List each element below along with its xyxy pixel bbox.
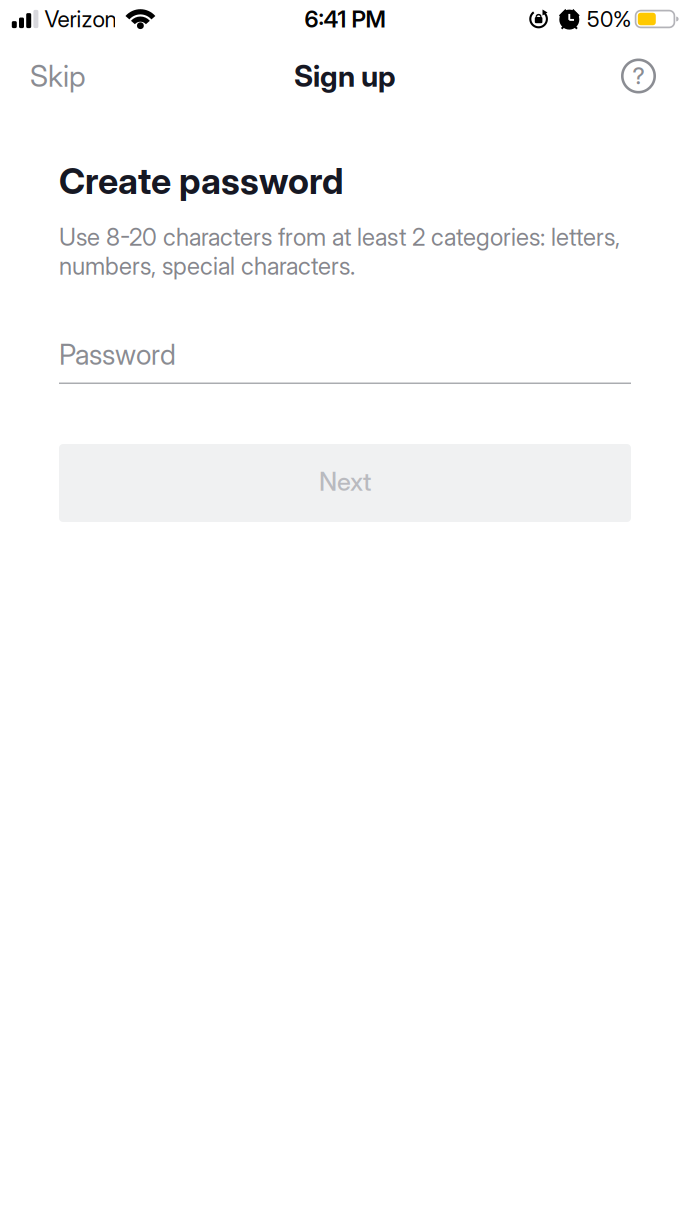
staticText: ? — [632, 62, 644, 90]
button[interactable]: Next — [59, 444, 631, 522]
staticText: 50% — [587, 6, 631, 32]
staticText: Create password — [59, 159, 344, 203]
button[interactable]: Skip — [30, 58, 86, 94]
staticText: Next — [319, 466, 371, 497]
staticText: Use 8-20 characters from at least 2 cate… — [59, 223, 620, 281]
staticText: Skip — [30, 58, 86, 94]
button[interactable]: Help — [621, 58, 656, 93]
staticText: Sign up — [294, 58, 396, 94]
staticText: 6:41 PM — [304, 5, 385, 33]
staticText: Password — [59, 338, 176, 371]
staticText: Verizon — [44, 5, 116, 33]
secureTextField[interactable]: Password — [59, 338, 631, 384]
